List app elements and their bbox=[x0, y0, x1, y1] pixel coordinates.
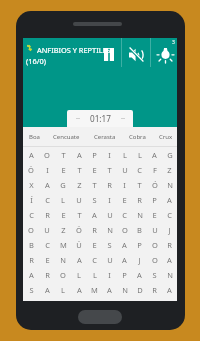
button[interactable]: A bbox=[39, 282, 55, 297]
button[interactable]: R bbox=[39, 267, 55, 282]
button[interactable]: O bbox=[147, 237, 162, 252]
button[interactable]: D bbox=[132, 282, 147, 297]
button[interactable]: A bbox=[117, 252, 132, 267]
button[interactable]: L bbox=[132, 147, 147, 162]
button[interactable]: Pause bbox=[97, 38, 121, 67]
button[interactable]: Crux bbox=[159, 127, 173, 147]
button[interactable]: A bbox=[39, 177, 55, 192]
button[interactable]: Cobra bbox=[129, 127, 146, 147]
button[interactable]: Boa bbox=[29, 127, 40, 147]
button[interactable]: R bbox=[147, 282, 162, 297]
button[interactable]: C bbox=[39, 237, 55, 252]
button[interactable]: M bbox=[87, 282, 102, 297]
button[interactable]: T bbox=[71, 162, 87, 177]
button[interactable]: N bbox=[162, 267, 177, 282]
button[interactable]: C bbox=[87, 252, 102, 267]
button[interactable]: A bbox=[23, 267, 39, 282]
button[interactable]: L bbox=[55, 282, 71, 297]
button[interactable]: S bbox=[87, 192, 102, 207]
button[interactable]: C bbox=[117, 207, 132, 222]
button[interactable]: F bbox=[147, 162, 162, 177]
button[interactable]: A bbox=[87, 207, 102, 222]
button[interactable]: J bbox=[132, 252, 147, 267]
button[interactable]: O bbox=[23, 222, 39, 237]
button[interactable]: T bbox=[87, 177, 102, 192]
button[interactable]: T bbox=[55, 147, 71, 162]
button[interactable]: M bbox=[55, 237, 71, 252]
button[interactable]: S bbox=[102, 237, 117, 252]
button[interactable]: E bbox=[117, 192, 132, 207]
button[interactable]: C bbox=[39, 192, 55, 207]
button[interactable]: Í bbox=[23, 192, 39, 207]
button[interactable]: A bbox=[71, 252, 87, 267]
button[interactable]: G bbox=[162, 147, 177, 162]
button[interactable]: P bbox=[87, 147, 102, 162]
button[interactable]: I bbox=[117, 177, 132, 192]
button[interactable]: E bbox=[55, 207, 71, 222]
button[interactable]: T bbox=[71, 207, 87, 222]
button[interactable]: Hint bbox=[151, 38, 179, 67]
button[interactable]: Ü bbox=[71, 237, 87, 252]
button[interactable]: U bbox=[71, 192, 87, 207]
button[interactable]: S bbox=[23, 282, 39, 297]
button[interactable]: Z bbox=[55, 222, 71, 237]
button[interactable]: 01:17 bbox=[67, 110, 133, 127]
button[interactable]: G bbox=[55, 177, 71, 192]
button[interactable]: L bbox=[117, 147, 132, 162]
button[interactable]: P bbox=[132, 237, 147, 252]
button[interactable]: Ó bbox=[147, 177, 162, 192]
button[interactable]: B bbox=[132, 222, 147, 237]
button[interactable]: N bbox=[117, 282, 132, 297]
button[interactable]: A bbox=[162, 252, 177, 267]
button[interactable]: O bbox=[55, 267, 71, 282]
button[interactable]: A bbox=[132, 267, 147, 282]
button[interactable]: A bbox=[23, 147, 39, 162]
button[interactable]: A bbox=[117, 237, 132, 252]
button[interactable]: U bbox=[102, 252, 117, 267]
button[interactable]: N bbox=[162, 177, 177, 192]
button[interactable]: B bbox=[23, 237, 39, 252]
button[interactable]: U bbox=[39, 222, 55, 237]
button[interactable]: U bbox=[117, 162, 132, 177]
button[interactable]: N bbox=[55, 252, 71, 267]
button[interactable]: R bbox=[102, 177, 117, 192]
button[interactable]: X bbox=[23, 177, 39, 192]
button[interactable]: E bbox=[55, 162, 71, 177]
button[interactable]: E bbox=[39, 252, 55, 267]
button[interactable]: A bbox=[162, 282, 177, 297]
button[interactable]: U bbox=[147, 222, 162, 237]
button[interactable]: R bbox=[87, 222, 102, 237]
button[interactable]: T bbox=[132, 177, 147, 192]
button[interactable]: A bbox=[147, 147, 162, 162]
button[interactable]: L bbox=[87, 267, 102, 282]
button[interactable]: Cerasta bbox=[94, 127, 116, 147]
button[interactable]: I bbox=[39, 162, 55, 177]
button[interactable]: R bbox=[162, 237, 177, 252]
button[interactable]: I bbox=[102, 147, 117, 162]
button[interactable]: E bbox=[147, 207, 162, 222]
button[interactable]: Mute sound bbox=[122, 38, 150, 67]
button[interactable]: Z bbox=[71, 177, 87, 192]
button[interactable]: L bbox=[71, 267, 87, 282]
button[interactable]: R bbox=[39, 207, 55, 222]
button[interactable]: C bbox=[132, 162, 147, 177]
button[interactable]: U bbox=[102, 207, 117, 222]
button[interactable]: A bbox=[71, 147, 87, 162]
button[interactable]: I bbox=[102, 192, 117, 207]
button[interactable]: L bbox=[55, 192, 71, 207]
button[interactable]: P bbox=[117, 267, 132, 282]
button[interactable]: P bbox=[147, 192, 162, 207]
button[interactable]: C bbox=[162, 207, 177, 222]
button[interactable]: Cencuate bbox=[53, 127, 80, 147]
button[interactable]: A bbox=[71, 282, 87, 297]
button[interactable]: O bbox=[117, 222, 132, 237]
button[interactable]: A bbox=[102, 282, 117, 297]
button[interactable]: E bbox=[87, 162, 102, 177]
button[interactable]: Ö bbox=[23, 162, 39, 177]
button[interactable]: E bbox=[87, 237, 102, 252]
button[interactable]: O bbox=[39, 147, 55, 162]
button[interactable]: R bbox=[132, 192, 147, 207]
button[interactable]: T bbox=[102, 162, 117, 177]
button[interactable]: J bbox=[162, 222, 177, 237]
button[interactable]: R bbox=[23, 252, 39, 267]
